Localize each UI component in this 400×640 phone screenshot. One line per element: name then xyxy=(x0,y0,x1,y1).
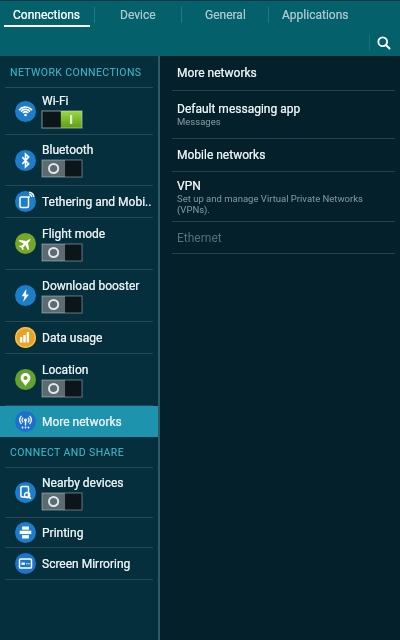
button[interactable]: Default messaging app xyxy=(160,91,400,139)
staticText: Connections xyxy=(13,8,81,22)
staticText: Wi-Fi xyxy=(42,94,69,108)
staticText: VPN xyxy=(177,179,201,193)
button[interactable]: Nearby devices xyxy=(0,468,158,518)
button[interactable]: Flight mode xyxy=(0,218,158,270)
staticText: Bluetooth xyxy=(42,143,94,157)
button[interactable]: Device xyxy=(95,0,181,30)
staticText: Default messaging app xyxy=(177,102,301,116)
button[interactable]: General xyxy=(182,0,268,30)
staticText: NETWORK CONNECTIONS xyxy=(10,66,142,78)
button[interactable] xyxy=(376,35,392,51)
staticText: (VPNs). xyxy=(177,204,210,215)
button[interactable]: More networks xyxy=(0,406,158,437)
button[interactable]: Data usage xyxy=(0,322,158,354)
button[interactable]: Tethering and Mobi.. xyxy=(0,186,158,218)
staticText: More networks xyxy=(177,66,257,80)
button[interactable]: Printing xyxy=(0,518,158,548)
staticText: Tethering and Mobi.. xyxy=(42,195,152,209)
button[interactable]: VPN xyxy=(160,172,400,222)
button[interactable]: Mobile networks xyxy=(160,139,400,172)
staticText: Data usage xyxy=(42,331,103,345)
staticText: Printing xyxy=(42,526,84,540)
staticText: More networks xyxy=(42,415,122,429)
staticText: Set up and manage Virtual Private Networ… xyxy=(177,193,363,204)
button[interactable]: Applications xyxy=(269,0,361,30)
button[interactable]: Connections xyxy=(0,0,94,30)
staticText: Ethernet xyxy=(177,231,222,245)
button[interactable]: Screen Mirroring xyxy=(0,548,158,580)
staticText: Mobile networks xyxy=(177,148,266,162)
staticText: Nearby devices xyxy=(42,476,124,490)
staticText: CONNECT AND SHARE xyxy=(10,446,125,458)
button[interactable]: Wi-Fi xyxy=(0,88,158,135)
staticText: Screen Mirroring xyxy=(42,557,131,571)
staticText: Applications xyxy=(282,8,349,22)
staticText: General xyxy=(205,8,246,22)
staticText: Location xyxy=(42,363,89,377)
staticText: Download booster xyxy=(42,279,140,293)
staticText: Device xyxy=(120,8,156,22)
staticText: Messages xyxy=(177,116,221,127)
button[interactable]: Ethernet xyxy=(160,222,400,254)
button[interactable]: Download booster xyxy=(0,270,158,322)
button[interactable]: Location xyxy=(0,354,158,406)
button[interactable]: Bluetooth xyxy=(0,135,158,186)
staticText: Flight mode xyxy=(42,227,106,241)
